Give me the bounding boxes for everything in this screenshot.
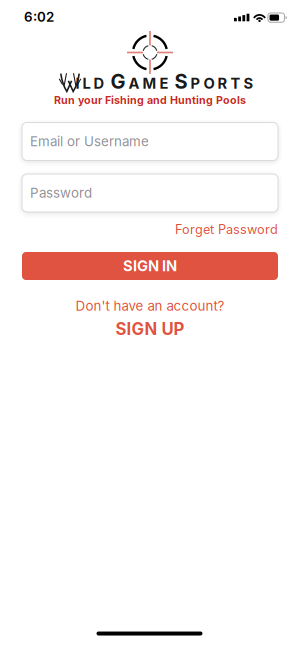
- staticText: 6:02: [24, 9, 54, 25]
- staticText: Forget Password: [175, 222, 278, 237]
- staticText: SIGN IN: [123, 257, 177, 275]
- button[interactable]: SIGN IN: [22, 252, 278, 280]
- button[interactable]: Forget Password: [175, 222, 278, 237]
- staticText: Password: [30, 185, 92, 201]
- staticText: Email or Username: [30, 133, 149, 149]
- staticText: SIGN UP: [115, 319, 184, 339]
- staticText: Run your Fishing and Hunting Pools: [54, 93, 246, 106]
- button[interactable]: Password: [22, 174, 278, 212]
- button[interactable]: Email or Username: [22, 122, 278, 160]
- staticText: Don't have an account?: [75, 298, 224, 314]
- staticText: I L D G A M E S P O R T S: [75, 70, 253, 93]
- button[interactable]: SIGN UP: [115, 319, 184, 339]
